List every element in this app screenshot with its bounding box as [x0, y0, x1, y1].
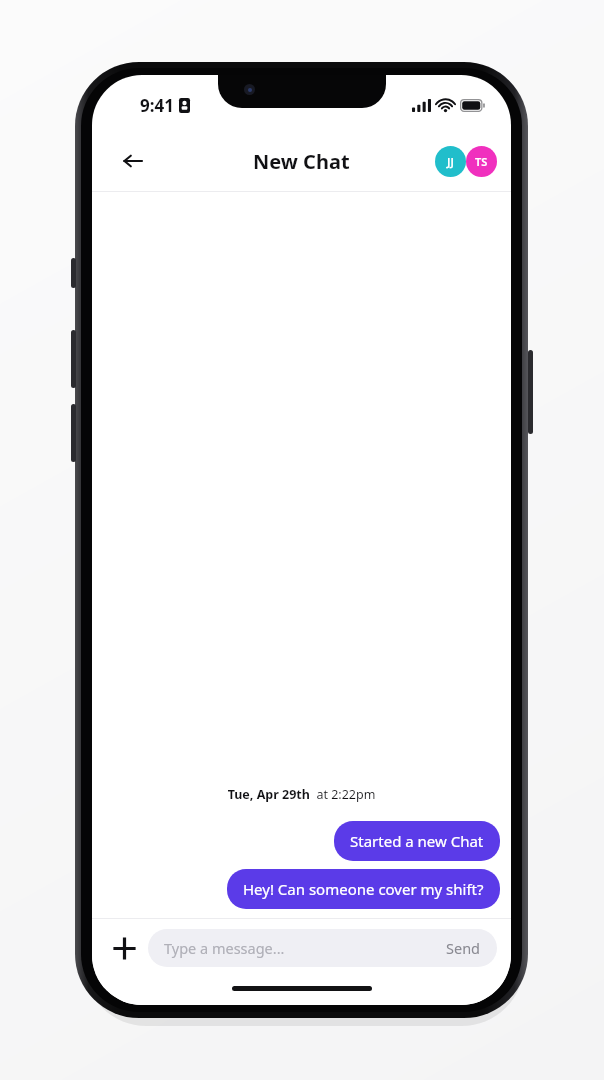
button[interactable]: Hey! Can someone cover my shift? — [227, 869, 500, 909]
staticText: Started a new Chat — [350, 831, 484, 851]
staticText: New Chat — [253, 148, 350, 175]
staticText: Type a message... — [164, 938, 446, 958]
staticText: Send — [446, 938, 481, 958]
staticText: TS — [475, 154, 488, 169]
staticText: Hey! Can someone cover my shift? — [243, 879, 484, 899]
button[interactable]: Type a message... — [148, 929, 497, 967]
staticText: 9:41 — [140, 94, 174, 117]
button[interactable]: Started a new Chat — [334, 821, 500, 861]
staticText: JJ — [447, 154, 454, 169]
button[interactable]: Send — [446, 938, 481, 958]
button[interactable]: Add attachment — [108, 932, 140, 964]
staticText: Tue, Apr 29th at 2:22pm — [92, 786, 511, 803]
button[interactable]: Chat participants — [435, 144, 497, 178]
button[interactable]: Back — [115, 144, 149, 178]
